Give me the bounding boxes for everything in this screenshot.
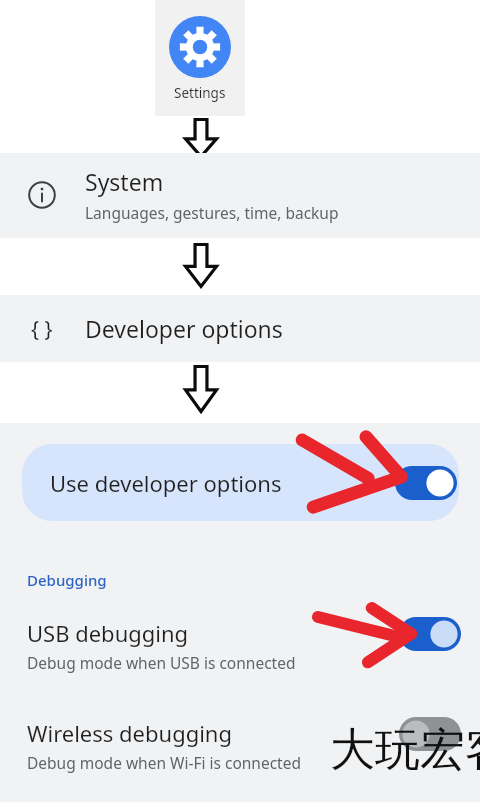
staticText: 大玩宏客	[330, 722, 480, 779]
staticText: { }	[31, 315, 53, 344]
button[interactable]: USB debugging	[0, 608, 480, 696]
staticText: Settings	[174, 84, 226, 102]
staticText: Use developer options	[50, 468, 282, 498]
staticText: Debug mode when USB is connected	[27, 652, 296, 673]
staticText: Debug mode when Wi-Fi is connected	[27, 752, 301, 773]
staticText: Wireless debugging	[27, 718, 232, 748]
staticText: Developer options	[85, 313, 283, 344]
button[interactable]: { }	[0, 295, 480, 362]
staticText: Languages, gestures, time, backup	[85, 202, 339, 223]
button[interactable]: Settings	[155, 0, 245, 116]
button[interactable]: Use developer options	[22, 444, 459, 521]
button[interactable]: Wireless debugging	[0, 708, 480, 796]
button[interactable]: System	[0, 153, 480, 238]
staticText: System	[85, 166, 164, 197]
staticText: USB debugging	[27, 618, 189, 648]
staticText: Debugging	[27, 570, 107, 590]
